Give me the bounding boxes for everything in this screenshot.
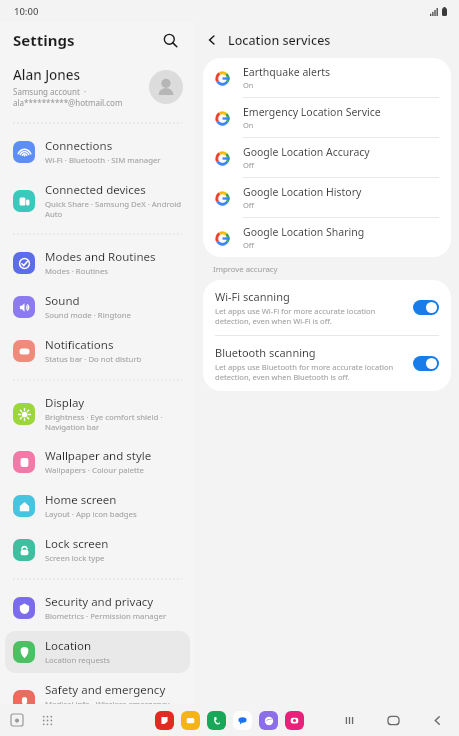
button[interactable]: phone: [207, 711, 226, 730]
button[interactable]: Alan Jones: [0, 58, 195, 116]
staticText: Off: [243, 200, 255, 210]
staticText: Modes · Routines: [45, 266, 109, 277]
button[interactable]: files: [181, 711, 200, 730]
button[interactable]: Bluetooth scanning: [203, 336, 451, 391]
staticText: Connections: [45, 138, 113, 154]
staticText: Notifications: [45, 337, 114, 353]
button[interactable]: Safety and emergency: [5, 675, 190, 704]
button[interactable]: Wallpaper and style: [5, 441, 190, 483]
button[interactable]: Earthquake alerts: [203, 58, 451, 97]
button[interactable]: Display: [5, 388, 190, 439]
staticText: Brightness · Eye comfort shield · Naviga…: [45, 412, 182, 432]
button[interactable]: Google Location History: [203, 178, 451, 217]
staticText: Google Location Sharing: [243, 225, 365, 239]
staticText: Wallpaper and style: [45, 448, 152, 464]
staticText: Let apps use Bluetooth for more accurate…: [215, 362, 403, 382]
staticText: Wallpapers · Colour palette: [45, 465, 144, 476]
staticText: Medical info · Wireless emergency alerts: [45, 699, 182, 704]
button[interactable]: Google Location Accuracy: [203, 138, 451, 177]
button[interactable]: Sound: [5, 286, 190, 328]
button[interactable]: camera: [285, 711, 304, 730]
button[interactable]: Back: [425, 708, 449, 732]
staticText: Status bar · Do not disturb: [45, 354, 142, 365]
button[interactable]: Connected devices: [5, 175, 190, 226]
staticText: ala**********@hotmail.com: [13, 97, 123, 108]
button[interactable]: note: [155, 711, 174, 730]
staticText: Location services: [228, 32, 331, 49]
staticText: 10:00: [14, 5, 39, 18]
button[interactable]: Back: [199, 27, 225, 53]
button[interactable]: Notifications: [5, 330, 190, 372]
button[interactable]: All apps: [36, 709, 58, 731]
button[interactable]: Home: [381, 708, 405, 732]
staticText: Wi-Fi · Bluetooth · SIM manager: [45, 155, 161, 166]
button[interactable]: Home screen: [5, 485, 190, 527]
staticText: Location: [45, 638, 92, 654]
staticText: Biometrics · Permission manager: [45, 611, 167, 622]
button[interactable]: Recent apps panel: [6, 709, 28, 731]
staticText: Layout · App icon badges: [45, 509, 137, 520]
staticText: Emergency Location Service: [243, 105, 381, 119]
button[interactable]: Location: [5, 631, 190, 673]
staticText: Let apps use Wi-Fi for more accurate loc…: [215, 306, 403, 326]
button[interactable]: Recents: [337, 708, 361, 732]
button[interactable]: Google Location Sharing: [203, 218, 451, 257]
staticText: Samsung account ·: [13, 86, 87, 97]
staticText: Location requests: [45, 655, 111, 666]
staticText: Settings: [13, 30, 75, 50]
staticText: Sound: [45, 293, 80, 309]
button[interactable]: Wi-Fi scanning toggle: [413, 300, 439, 315]
button[interactable]: Security and privacy: [5, 587, 190, 629]
button[interactable]: Search: [157, 27, 183, 53]
button[interactable]: internet: [259, 711, 278, 730]
staticText: On: [243, 120, 254, 130]
staticText: Display: [45, 395, 85, 411]
button[interactable]: Wi-Fi scanning: [203, 280, 451, 335]
staticText: Bluetooth scanning: [215, 345, 316, 360]
staticText: Security and privacy: [45, 594, 154, 610]
staticText: Improve accuracy: [213, 264, 278, 275]
staticText: Wi-Fi scanning: [215, 289, 290, 304]
staticText: Screen lock type: [45, 553, 105, 564]
staticText: Earthquake alerts: [243, 65, 331, 79]
staticText: Lock screen: [45, 536, 109, 552]
staticText: Off: [243, 240, 255, 250]
staticText: On: [243, 80, 254, 90]
button[interactable]: messages: [233, 711, 252, 730]
staticText: Off: [243, 160, 255, 170]
staticText: Modes and Routines: [45, 249, 156, 265]
staticText: Sound mode · Ringtone: [45, 310, 132, 321]
staticText: Quick Share · Samsung DeX · Android Auto: [45, 199, 182, 219]
staticText: Home screen: [45, 492, 117, 508]
staticText: Alan Jones: [13, 66, 81, 84]
staticText: Google Location History: [243, 185, 362, 199]
button[interactable]: Modes and Routines: [5, 242, 190, 284]
button[interactable]: Emergency Location Service: [203, 98, 451, 137]
staticText: Google Location Accuracy: [243, 145, 370, 159]
button[interactable]: Connections: [5, 131, 190, 173]
staticText: Safety and emergency: [45, 682, 166, 698]
button[interactable]: Lock screen: [5, 529, 190, 571]
button[interactable]: Bluetooth scanning toggle: [413, 356, 439, 371]
staticText: Connected devices: [45, 182, 146, 198]
